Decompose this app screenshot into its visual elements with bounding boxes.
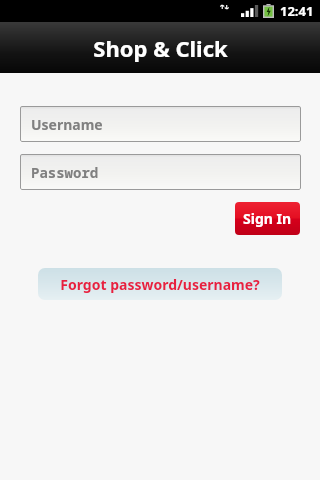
staticText: Username [31,115,103,134]
button[interactable]: Sign In [235,202,300,235]
staticText: Shop & Click [93,33,228,63]
button[interactable]: Username [20,106,301,142]
button[interactable]: Forgot password/username? [38,268,282,300]
staticText: Forgot password/username? [60,275,260,294]
button[interactable]: Password [20,154,301,190]
staticText: Sign In [243,209,292,228]
staticText: Password [31,163,99,182]
staticText: 12:41 [280,2,314,20]
